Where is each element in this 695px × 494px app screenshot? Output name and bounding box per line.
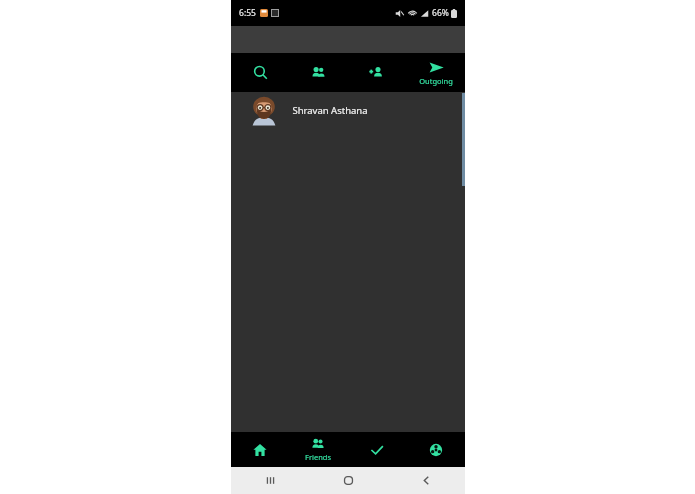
- staticText: Shravan Asthana: [292, 104, 368, 117]
- button[interactable]: Add friend: [347, 53, 406, 92]
- button[interactable]: Shravan Asthana: [231, 92, 465, 128]
- button[interactable]: Confirm: [347, 432, 406, 467]
- button[interactable]: Movies: [406, 432, 465, 467]
- button[interactable]: Outgoing: [406, 53, 465, 92]
- staticText: Outgoing: [419, 76, 453, 86]
- button[interactable]: Home: [231, 432, 289, 467]
- button[interactable]: Friends: [289, 53, 347, 92]
- button[interactable]: Friends: [289, 432, 347, 467]
- staticText: 6:55: [239, 7, 256, 19]
- button[interactable]: Home: [309, 467, 387, 494]
- button[interactable]: Back: [387, 467, 465, 494]
- button[interactable]: Recent apps: [231, 467, 309, 494]
- staticText: 66%: [432, 7, 449, 19]
- staticText: Friends: [305, 452, 331, 462]
- button[interactable]: Search: [231, 53, 289, 92]
